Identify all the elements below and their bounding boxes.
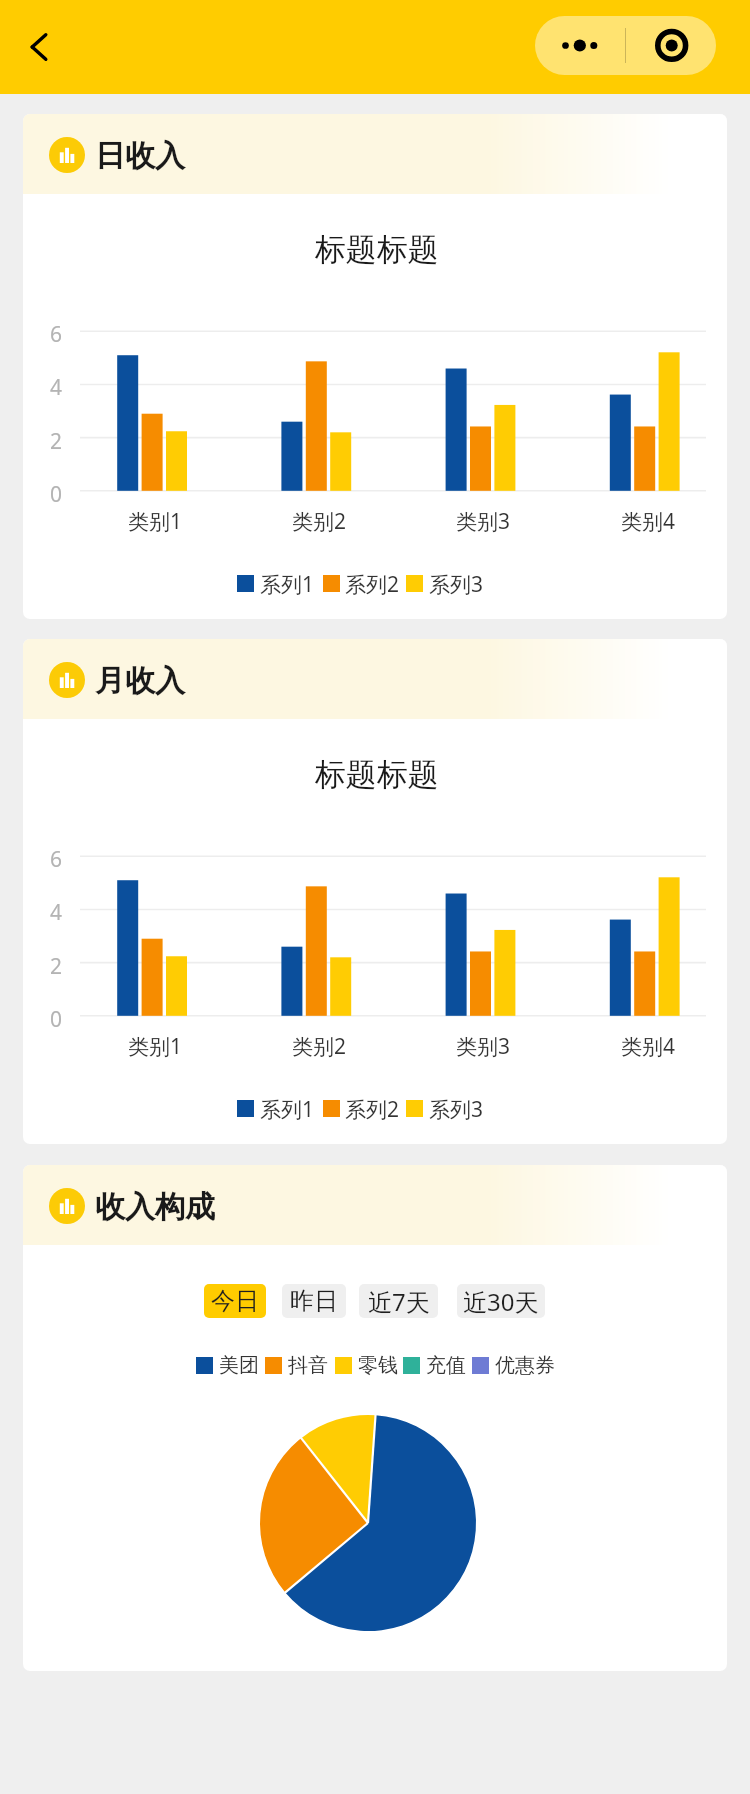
staticText: 美团 — [219, 1353, 259, 1378]
staticText: 月收入 — [95, 662, 185, 700]
staticText: 标题标题 — [315, 230, 439, 269]
staticText: 抖音 — [288, 1353, 328, 1378]
button[interactable]: 近7天 — [359, 1284, 438, 1318]
staticText: 系列1 — [260, 570, 315, 599]
staticText: 收入构成 — [95, 1188, 215, 1226]
staticText: 类别3 — [456, 1032, 511, 1061]
staticText: 今日 — [211, 1286, 259, 1316]
staticText: 2 — [50, 952, 63, 981]
staticText: 日收入 — [95, 137, 185, 175]
staticText: 近30天 — [463, 1285, 539, 1318]
button[interactable]: 近30天 — [457, 1284, 545, 1318]
staticText: 类别1 — [128, 1032, 183, 1061]
staticText: 标题标题 — [315, 755, 439, 794]
staticText: 类别1 — [128, 507, 183, 536]
staticText: 系列1 — [260, 1095, 315, 1124]
staticText: 2 — [50, 427, 63, 456]
staticText: 系列3 — [429, 1095, 484, 1124]
staticText: 4 — [50, 898, 63, 927]
button[interactable]: 今日 — [204, 1284, 266, 1318]
staticText: 类别4 — [621, 507, 676, 536]
staticText: 6 — [50, 845, 63, 874]
staticText: 类别2 — [292, 1032, 347, 1061]
staticText: 系列2 — [345, 570, 400, 599]
staticText: 4 — [50, 373, 63, 402]
staticText: 昨日 — [290, 1286, 338, 1316]
button[interactable]: 昨日 — [282, 1284, 346, 1318]
staticText: 类别2 — [292, 507, 347, 536]
staticText: 6 — [50, 320, 63, 349]
staticText: 充值 — [426, 1353, 466, 1378]
staticText: 系列2 — [345, 1095, 400, 1124]
staticText: 零钱 — [358, 1353, 398, 1378]
button[interactable]: Back — [10, 18, 68, 76]
staticText: 类别4 — [621, 1032, 676, 1061]
staticText: 0 — [50, 480, 63, 509]
button[interactable]: Close — [626, 16, 716, 75]
staticText: 近7天 — [368, 1285, 430, 1318]
staticText: 0 — [50, 1005, 63, 1034]
staticText: 优惠券 — [495, 1353, 555, 1378]
staticText: 类别3 — [456, 507, 511, 536]
staticText: 系列3 — [429, 570, 484, 599]
button[interactable]: More options — [535, 16, 625, 75]
